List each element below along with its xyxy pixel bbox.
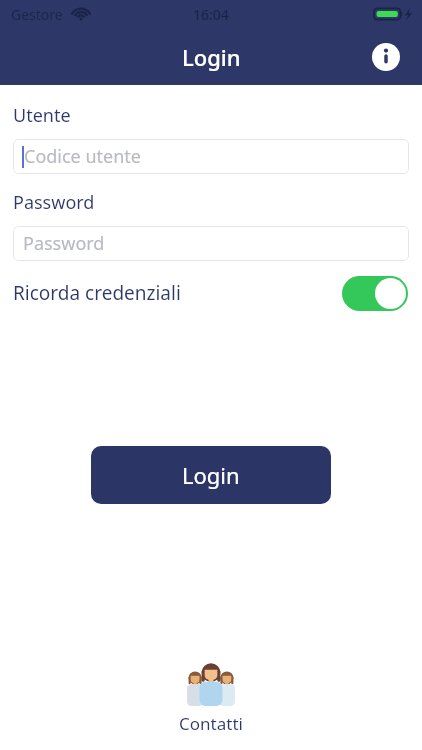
staticText: Gestore: [11, 5, 63, 24]
staticText: Utente: [13, 103, 71, 128]
button[interactable]: Contatti: [0, 658, 422, 735]
button[interactable]: Login: [91, 446, 331, 504]
button[interactable]: Password: [13, 226, 409, 261]
button[interactable]: Ricorda credenziali: [0, 271, 422, 315]
staticText: Password: [13, 190, 95, 215]
button[interactable]: Codice utente: [13, 139, 409, 174]
staticText: Login: [182, 42, 241, 72]
staticText: Ricorda credenziali: [13, 280, 181, 306]
staticText: Password: [23, 231, 105, 256]
button[interactable]: Info: [372, 43, 400, 71]
staticText: Contatti: [179, 712, 243, 735]
staticText: 16:04: [193, 5, 229, 24]
staticText: Codice utente: [24, 144, 141, 169]
staticText: Login: [182, 460, 240, 490]
